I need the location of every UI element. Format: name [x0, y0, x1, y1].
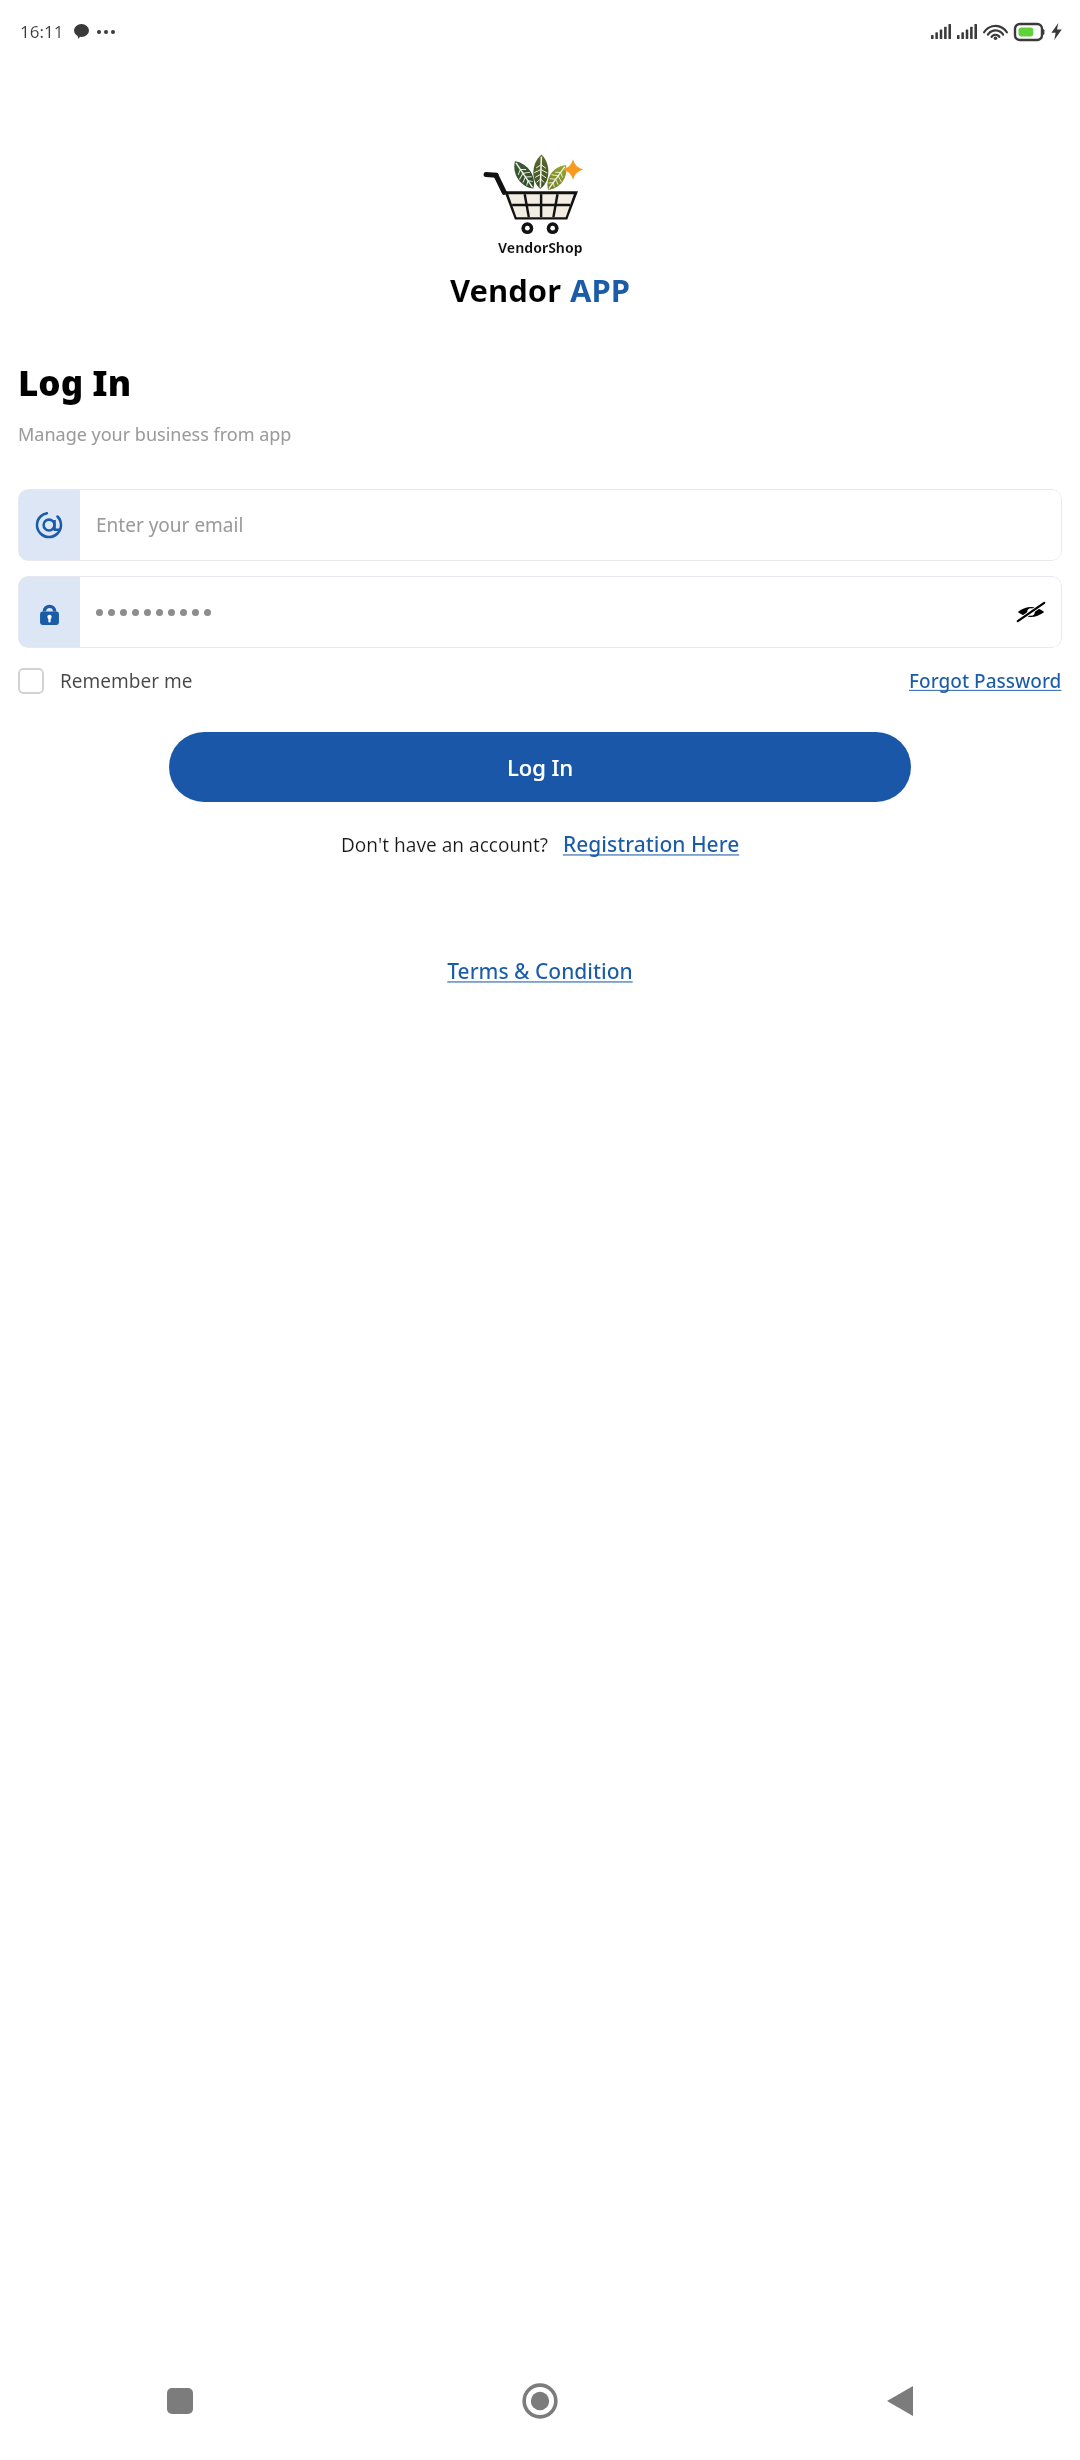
button[interactable]: Show password [18, 576, 1062, 648]
staticText: Terms & Condition [447, 957, 633, 986]
staticText: Forgot Password [909, 668, 1062, 694]
staticText: Registration Here [563, 830, 740, 859]
staticText: Vendor [450, 269, 570, 311]
staticText: Enter your email [96, 512, 244, 538]
button[interactable]: Show password [1004, 585, 1058, 639]
staticText: Remember me [60, 668, 193, 694]
button[interactable]: Recents [0, 2342, 360, 2460]
staticText: VendorShop [498, 238, 583, 257]
staticText: Manage your business from app [18, 422, 292, 447]
button[interactable]: Remember me [18, 662, 193, 700]
button[interactable]: Registration Here [563, 830, 740, 859]
staticText: 16:11 [20, 20, 64, 43]
button[interactable]: Log In [169, 732, 911, 802]
button[interactable]: Home [360, 2342, 720, 2460]
button[interactable]: Terms & Condition [447, 957, 633, 986]
staticText: Log In [18, 359, 132, 407]
staticText: Don't have an account? [341, 832, 549, 858]
button[interactable]: Back [720, 2342, 1080, 2460]
button[interactable]: Forgot Password [909, 662, 1062, 700]
staticText: APP [570, 269, 630, 311]
button[interactable]: Enter your email [18, 489, 1062, 561]
staticText: Log In [507, 752, 574, 782]
